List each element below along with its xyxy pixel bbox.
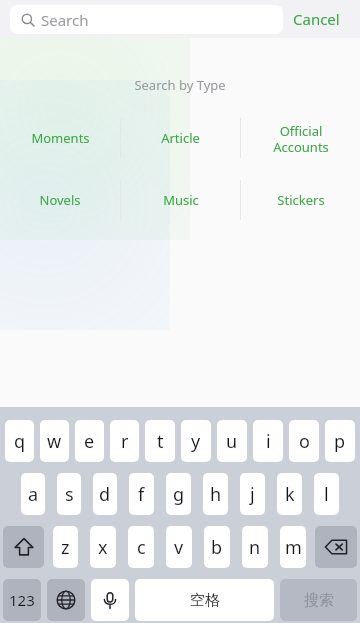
button[interactable]: Stickers	[241, 177, 360, 223]
staticText: m	[285, 535, 302, 560]
button[interactable]: Backspace	[315, 526, 357, 568]
staticText: 搜索	[304, 591, 334, 610]
staticText: 空格	[190, 591, 220, 610]
button[interactable]: Change keyboard	[47, 579, 85, 621]
staticText: e	[84, 429, 95, 454]
button[interactable]: Music	[121, 177, 240, 223]
button[interactable]: l	[314, 473, 339, 515]
button[interactable]: r	[110, 420, 139, 462]
button[interactable]: 空格	[135, 579, 274, 621]
button[interactable]: i	[253, 420, 283, 462]
staticText: f	[138, 482, 145, 507]
staticText: o	[299, 429, 310, 454]
button[interactable]: Novels	[0, 177, 120, 223]
staticText: h	[210, 482, 222, 507]
button[interactable]: 123	[3, 579, 41, 621]
button[interactable]: o	[289, 420, 319, 462]
button[interactable]: x	[90, 526, 116, 568]
button[interactable]: Official Accounts	[241, 115, 360, 161]
button[interactable]: q	[5, 420, 34, 462]
staticText: v	[174, 535, 184, 560]
staticText: Music	[163, 191, 199, 209]
button[interactable]: v	[166, 526, 192, 568]
staticText: 123	[9, 590, 35, 610]
button[interactable]: Cancel	[283, 3, 350, 35]
staticText: x	[98, 535, 108, 560]
button[interactable]: u	[217, 420, 247, 462]
staticText: k	[285, 482, 295, 507]
staticText: y	[191, 429, 201, 454]
staticText: w	[47, 429, 62, 454]
staticText: q	[14, 429, 26, 454]
staticText: g	[173, 482, 185, 507]
button[interactable]: Article	[121, 115, 240, 161]
button[interactable]: y	[181, 420, 211, 462]
staticText: r	[121, 429, 129, 454]
button[interactable]: n	[242, 526, 268, 568]
button[interactable]: m	[280, 526, 306, 568]
staticText: Moments	[31, 129, 90, 147]
staticText: c	[137, 535, 146, 560]
staticText: s	[65, 482, 74, 507]
staticText: i	[266, 429, 271, 454]
staticText: b	[211, 535, 223, 560]
staticText: z	[61, 535, 70, 560]
button[interactable]: p	[325, 420, 355, 462]
button[interactable]: w	[40, 420, 69, 462]
button[interactable]: f	[129, 473, 154, 515]
staticText: Official Accounts	[273, 122, 329, 155]
staticText: Search by Type	[0, 76, 360, 94]
button[interactable]: s	[57, 473, 81, 515]
button[interactable]: Shift	[3, 526, 44, 568]
staticText: u	[226, 429, 238, 454]
button[interactable]: h	[203, 473, 228, 515]
staticText: j	[250, 482, 255, 507]
staticText: Stickers	[277, 191, 325, 209]
staticText: Article	[161, 129, 200, 147]
button[interactable]: j	[240, 473, 265, 515]
button[interactable]: z	[53, 526, 78, 568]
staticText: Cancel	[293, 9, 340, 29]
staticText: t	[157, 429, 164, 454]
button[interactable]: a	[21, 473, 45, 515]
button[interactable]: c	[128, 526, 154, 568]
button[interactable]: Moments	[0, 115, 120, 161]
button[interactable]: Dictation	[91, 579, 129, 621]
button[interactable]: t	[145, 420, 175, 462]
button[interactable]: b	[204, 526, 230, 568]
staticText: a	[28, 482, 39, 507]
button[interactable]: g	[166, 473, 191, 515]
button[interactable]: e	[75, 420, 104, 462]
button[interactable]: Search	[10, 5, 283, 34]
button[interactable]: k	[277, 473, 302, 515]
staticText: l	[324, 482, 329, 507]
staticText: n	[249, 535, 261, 560]
staticText: Novels	[39, 191, 81, 209]
button[interactable]: d	[93, 473, 117, 515]
button[interactable]: 搜索	[280, 579, 357, 621]
staticText: d	[99, 482, 111, 507]
staticText: Search	[41, 10, 89, 30]
staticText: p	[334, 429, 346, 454]
